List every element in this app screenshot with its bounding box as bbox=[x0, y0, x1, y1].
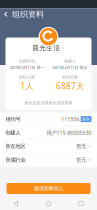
staticText: 所属行业 bbox=[5, 157, 25, 163]
staticText: 1人 bbox=[20, 81, 33, 91]
staticText: 暂无 bbox=[76, 157, 86, 163]
staticText: 晨光生活 bbox=[32, 44, 60, 52]
staticText: 组织人数 bbox=[19, 75, 35, 79]
staticText: 组织号 bbox=[5, 116, 20, 122]
staticText: 6887天 bbox=[56, 81, 84, 91]
button[interactable]: Back bbox=[0, 197, 32, 210]
staticText: 创建人 bbox=[64, 59, 76, 64]
staticText: 创建人 bbox=[5, 129, 20, 136]
button[interactable]: 所在地区 bbox=[0, 140, 97, 153]
button[interactable]: 邀请同事加入 bbox=[0, 183, 97, 194]
button[interactable]: 组织号 bbox=[0, 112, 97, 126]
button[interactable]: Back bbox=[0, 8, 12, 20]
staticText: 创建时间 bbox=[19, 59, 35, 64]
staticText: 111556 bbox=[61, 116, 79, 123]
staticText: 组织信息仅限组织成员查看 bbox=[24, 100, 72, 105]
staticText: 暂无 bbox=[76, 143, 86, 150]
staticText: 所在地区 bbox=[5, 143, 25, 150]
staticText: 用户115-80005530 bbox=[46, 129, 91, 136]
staticText: 组织资料 bbox=[12, 9, 44, 19]
staticText: 组织天数 bbox=[62, 75, 78, 79]
staticText: 2011年2月11日 周五 bbox=[52, 65, 87, 70]
staticText: 复制 bbox=[82, 117, 90, 121]
button[interactable]: Home bbox=[32, 197, 65, 210]
staticText: 2019年2月11日 周一 bbox=[9, 65, 44, 70]
staticText: 邀请同事加入 bbox=[33, 185, 63, 192]
button[interactable]: Recents bbox=[65, 197, 97, 210]
button[interactable]: 创建人 bbox=[0, 126, 97, 140]
button[interactable]: 所属行业 bbox=[0, 153, 97, 167]
